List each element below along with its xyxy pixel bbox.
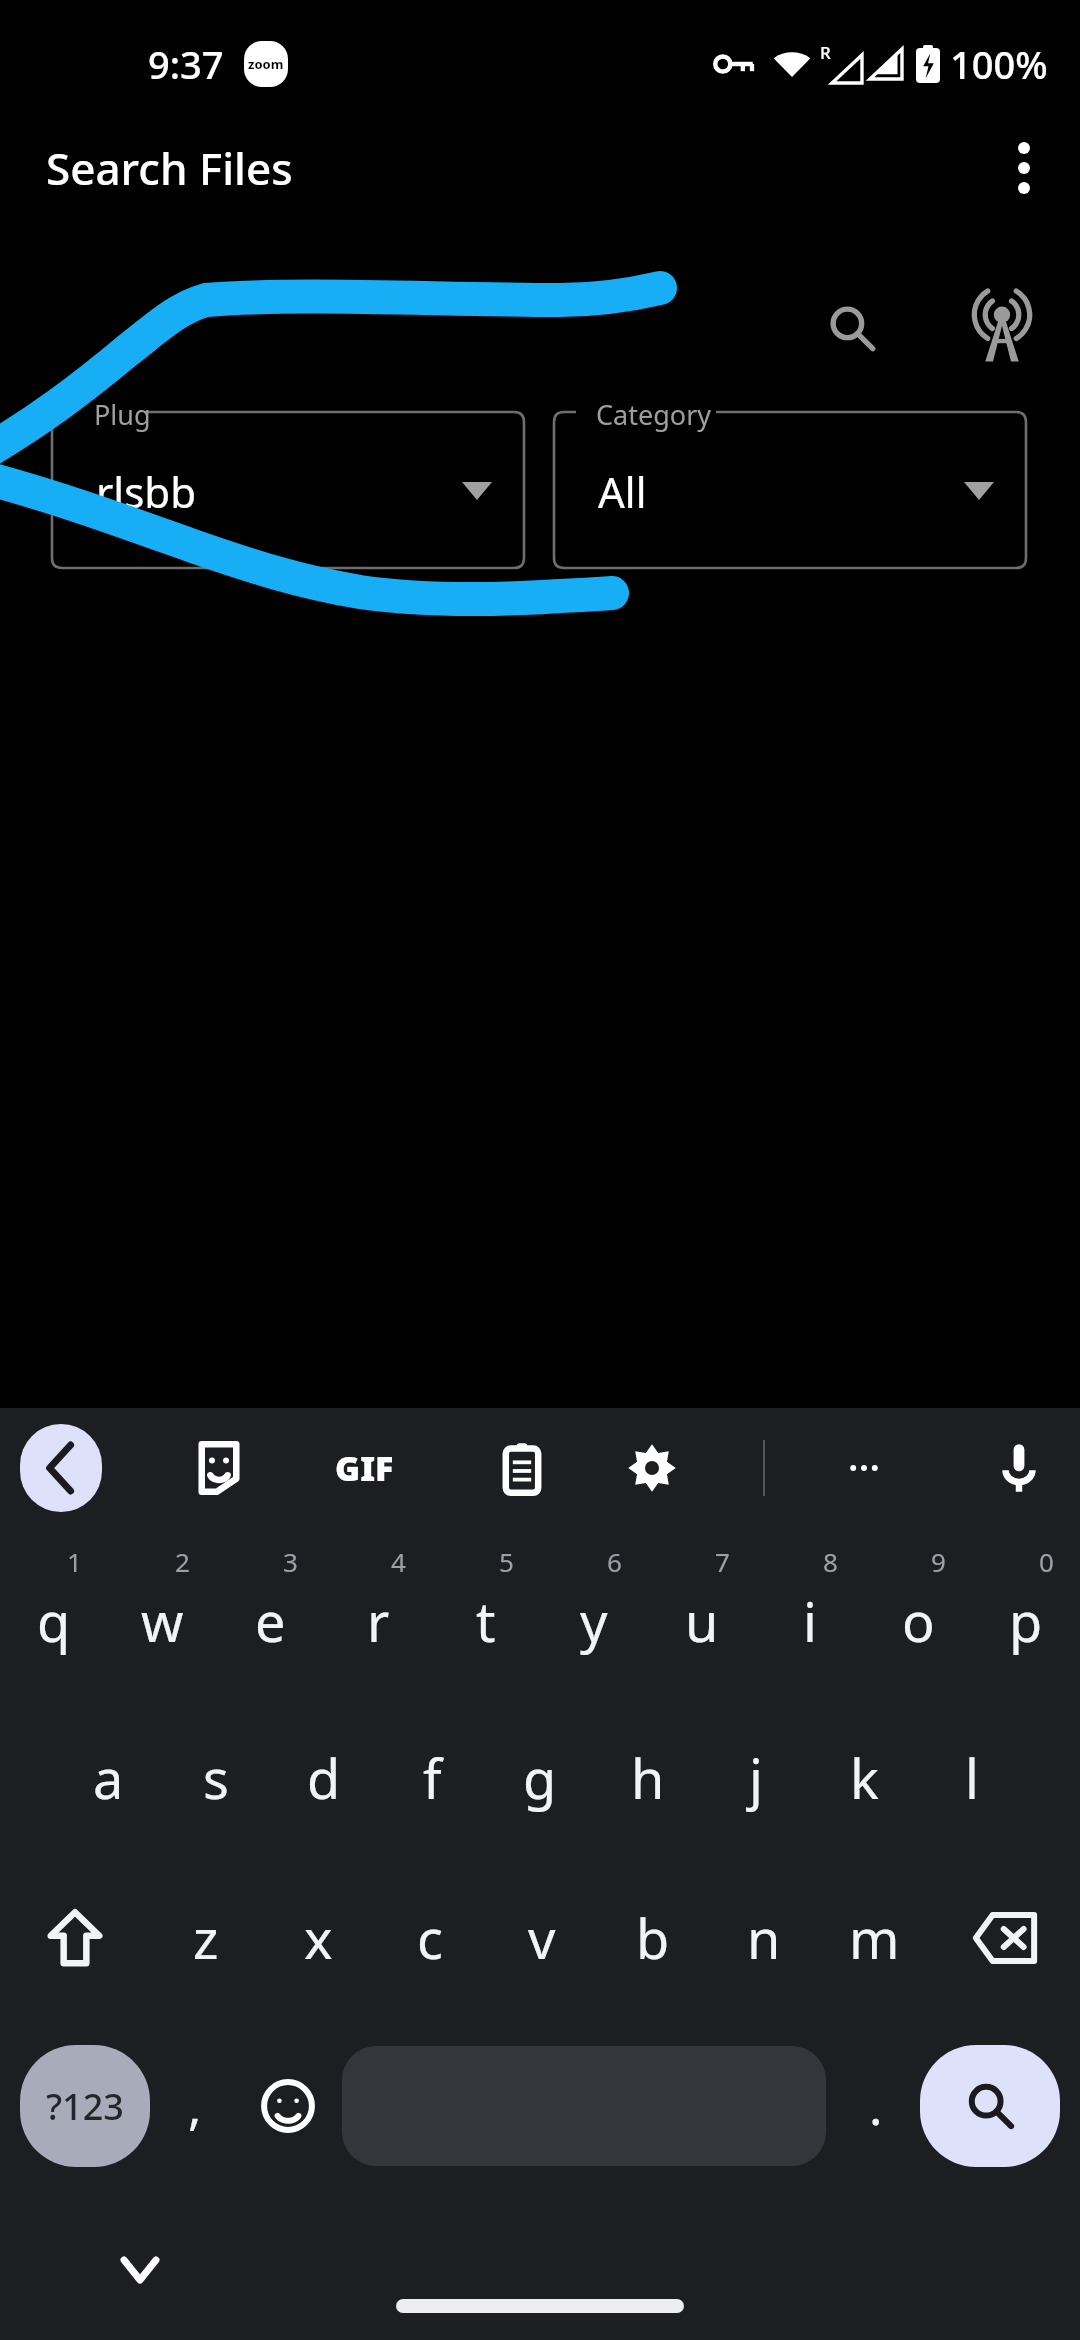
button[interactable]: z — [150, 1858, 262, 2018]
button[interactable]: g — [486, 1698, 594, 1858]
button[interactable]: 5 — [432, 1528, 540, 1698]
button[interactable]: 0 — [972, 1528, 1080, 1698]
button[interactable]: h — [594, 1698, 702, 1858]
staticText: 7 — [715, 1544, 730, 1579]
button[interactable]: f — [378, 1698, 486, 1858]
staticText: . — [869, 2072, 883, 2140]
button[interactable]: ?123 — [20, 2045, 150, 2167]
staticText: c — [417, 1901, 443, 1975]
button[interactable]: m — [819, 1858, 930, 2018]
staticText: , — [188, 2072, 202, 2140]
button[interactable]: Backspace — [930, 1858, 1080, 2018]
staticText: a — [93, 1741, 124, 1815]
button[interactable]: Back — [20, 1424, 102, 1512]
staticText: zoom — [248, 55, 284, 73]
staticText: ?123 — [46, 2082, 124, 2131]
button[interactable]: Hide keyboard — [104, 2234, 176, 2306]
staticText: w — [141, 1584, 184, 1658]
staticText: o — [902, 1584, 935, 1658]
staticText: rlsbb — [96, 463, 196, 520]
staticText: 9:37 — [148, 38, 224, 90]
button[interactable]: c — [374, 1858, 486, 2018]
button[interactable]: x — [262, 1858, 374, 2018]
staticText: b — [636, 1901, 670, 1975]
button[interactable]: 7 — [648, 1528, 756, 1698]
button[interactable]: More — [820, 1424, 908, 1512]
staticText: 3 — [283, 1544, 298, 1579]
staticText: k — [850, 1741, 879, 1815]
button[interactable]: Stickers — [175, 1424, 263, 1512]
staticText: 8 — [823, 1544, 838, 1579]
staticText: 4 — [391, 1544, 406, 1579]
button[interactable]: 9 — [864, 1528, 972, 1698]
button[interactable]: Search — [806, 282, 898, 374]
staticText: 6 — [607, 1544, 622, 1579]
button[interactable]: a — [54, 1698, 162, 1858]
staticText: Search Files — [46, 138, 293, 198]
button[interactable]: Category — [554, 398, 1026, 568]
button[interactable]: Keyboard settings — [608, 1424, 696, 1512]
button[interactable]: 3 — [216, 1528, 324, 1698]
staticText: 5 — [499, 1544, 514, 1579]
button[interactable]: 6 — [540, 1528, 648, 1698]
button[interactable]: Plug — [52, 398, 524, 568]
button[interactable]: 2 — [108, 1528, 216, 1698]
staticText: p — [1009, 1584, 1043, 1658]
staticText: q — [37, 1584, 71, 1658]
button[interactable]: Search — [920, 2045, 1060, 2167]
button[interactable]: l — [918, 1698, 1026, 1858]
staticText: s — [203, 1741, 229, 1815]
staticText: e — [255, 1584, 286, 1658]
button[interactable]: 8 — [756, 1528, 864, 1698]
staticText: Plug — [94, 396, 151, 433]
button[interactable]: Space — [342, 2046, 826, 2166]
button[interactable]: GIF — [320, 1424, 408, 1512]
button[interactable]: s — [162, 1698, 270, 1858]
staticText: m — [849, 1901, 900, 1975]
staticText: x — [304, 1901, 333, 1975]
button[interactable]: Shift — [0, 1858, 150, 2018]
button[interactable]: b — [597, 1858, 708, 2018]
button[interactable]: k — [810, 1698, 918, 1858]
button[interactable]: Clipboard — [478, 1424, 566, 1512]
staticText: u — [685, 1584, 719, 1658]
button[interactable]: Voice input — [975, 1424, 1063, 1512]
staticText: 1 — [67, 1544, 82, 1579]
staticText: g — [523, 1741, 557, 1815]
staticText: All — [598, 463, 647, 520]
staticText: n — [747, 1901, 781, 1975]
button[interactable]: n — [708, 1858, 819, 2018]
button[interactable]: 1 — [0, 1528, 108, 1698]
staticText: f — [423, 1741, 442, 1815]
button[interactable]: , — [150, 2045, 240, 2167]
staticText: Category — [596, 396, 712, 433]
button[interactable]: j — [702, 1698, 810, 1858]
staticText: r — [367, 1584, 390, 1658]
staticText: 9 — [931, 1544, 946, 1579]
staticText: j — [749, 1741, 763, 1815]
button[interactable]: d — [270, 1698, 378, 1858]
staticText: d — [307, 1741, 341, 1815]
staticText: 100% — [950, 38, 1048, 90]
staticText: R — [820, 41, 831, 64]
staticText: l — [965, 1741, 979, 1815]
staticText: GIF — [335, 1445, 394, 1491]
staticText: 2 — [175, 1544, 190, 1579]
staticText: v — [528, 1901, 556, 1975]
staticText: 0 — [1039, 1544, 1054, 1579]
button[interactable]: Emoji — [240, 2045, 336, 2167]
staticText: t — [476, 1584, 496, 1658]
button[interactable]: . — [832, 2045, 920, 2167]
button[interactable]: Broadcast — [954, 280, 1050, 376]
staticText: y — [580, 1584, 608, 1658]
staticText: i — [803, 1584, 817, 1658]
button[interactable]: 4 — [324, 1528, 432, 1698]
button[interactable]: More options — [982, 126, 1066, 210]
button[interactable]: v — [486, 1858, 597, 2018]
staticText: z — [193, 1901, 219, 1975]
staticText: h — [631, 1741, 665, 1815]
